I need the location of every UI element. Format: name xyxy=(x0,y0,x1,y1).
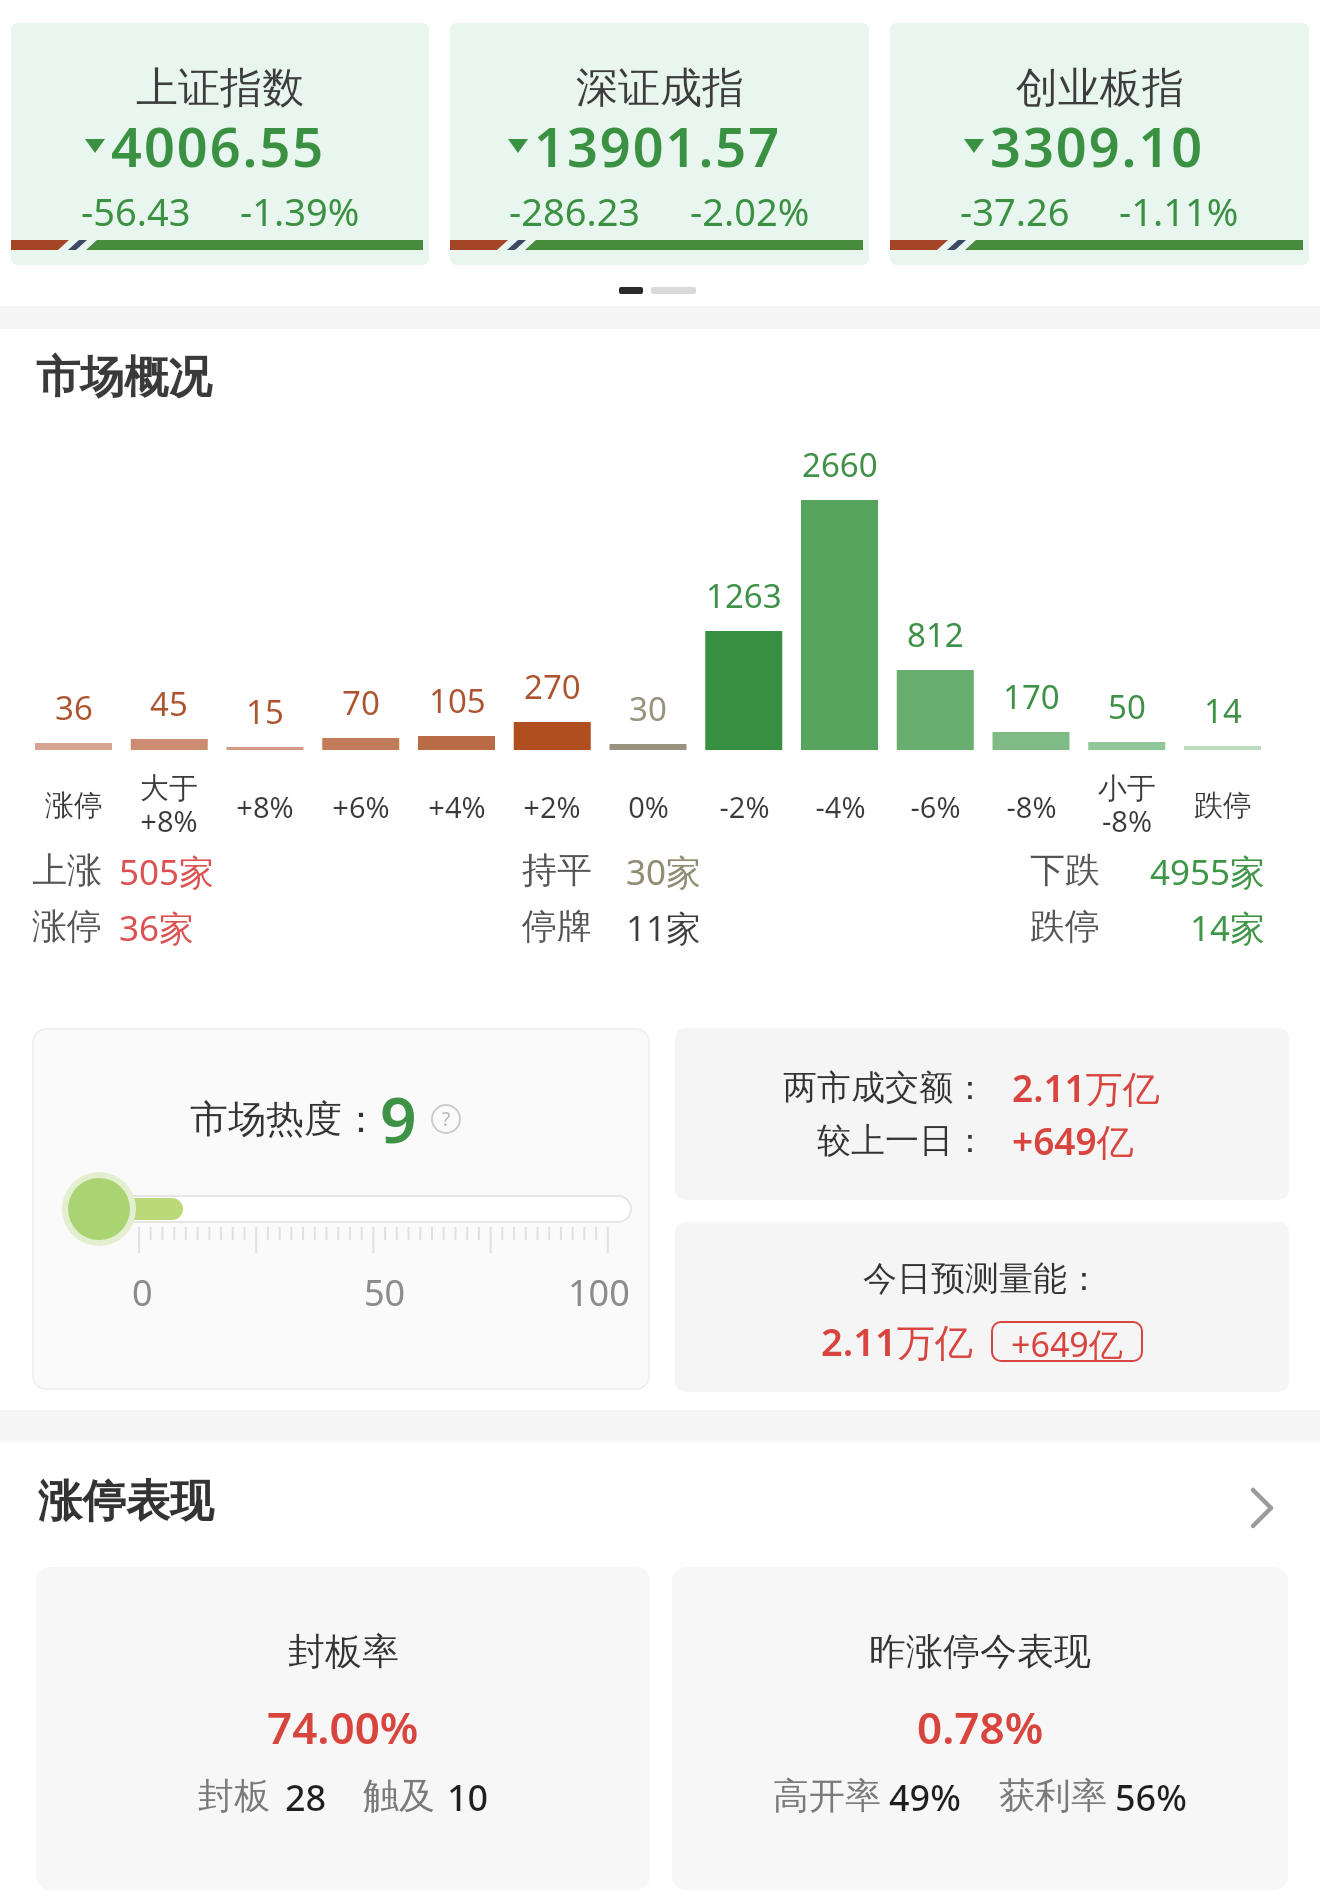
button[interactable]: 今日预测量能： xyxy=(675,1222,1289,1392)
staticText: 小于 -8% xyxy=(1098,770,1156,840)
staticText: 50 xyxy=(364,1268,406,1317)
staticText: 4955家 xyxy=(1150,848,1266,896)
staticText: 2660 xyxy=(802,442,878,487)
staticText: 270 xyxy=(524,664,581,709)
staticText: 上证指数 xyxy=(136,62,304,115)
staticText: 涨停表现 xyxy=(38,1474,214,1529)
staticText: 1263 xyxy=(706,573,782,618)
staticText: 9 xyxy=(380,1075,417,1162)
staticText: 74.00% xyxy=(267,1697,419,1757)
staticText: ? xyxy=(442,1106,451,1132)
staticText: 505家 xyxy=(119,848,215,896)
staticText: 2.11万亿 xyxy=(1012,1062,1160,1113)
staticText: 涨停 xyxy=(45,787,103,824)
staticText: 较上一日： xyxy=(817,1119,987,1162)
staticText: +649亿 xyxy=(1011,1321,1123,1362)
staticText: +8% xyxy=(236,787,294,826)
staticText: 大于 +8% xyxy=(140,770,198,840)
staticText: 28 xyxy=(285,1773,327,1822)
button[interactable]: 市场热度： xyxy=(32,1028,650,1390)
staticText: -1.39% xyxy=(240,185,360,237)
staticText: 跌停 xyxy=(1030,904,1100,948)
staticText: -4% xyxy=(815,787,866,826)
staticText: +6% xyxy=(332,787,390,826)
staticText: 市场概况 xyxy=(36,350,212,405)
staticText: 2.11万亿 xyxy=(821,1315,973,1367)
staticText: -2.02% xyxy=(690,185,810,237)
button[interactable]: 封板率 xyxy=(36,1567,650,1890)
staticText: 触及 xyxy=(363,1773,435,1818)
button[interactable]: 两市成交额： xyxy=(675,1028,1289,1200)
button[interactable]: 上证指数 xyxy=(11,23,429,265)
staticText: 封板率 xyxy=(288,1628,399,1675)
staticText: +649亿 xyxy=(1012,1115,1134,1166)
staticText: 今日预测量能： xyxy=(863,1257,1101,1300)
staticText: 高开率 xyxy=(773,1773,881,1818)
staticText: 56% xyxy=(1115,1773,1187,1822)
staticText: 30家 xyxy=(626,848,702,896)
staticText: 3309.10 xyxy=(990,109,1205,183)
staticText: 36家 xyxy=(119,904,195,952)
staticText: 30 xyxy=(629,686,667,731)
staticText: 持平 xyxy=(522,848,592,892)
staticText: 0% xyxy=(628,787,669,826)
staticText: 停牌 xyxy=(522,904,592,948)
staticText: -56.43 xyxy=(81,185,191,237)
button[interactable]: 深证成指 xyxy=(450,23,869,265)
staticText: 4006.55 xyxy=(111,109,326,183)
staticText: +2% xyxy=(523,787,581,826)
staticText: 下跌 xyxy=(1030,848,1100,892)
staticText: 70 xyxy=(342,680,380,725)
staticText: 45 xyxy=(150,681,188,726)
staticText: 创业板指 xyxy=(1016,62,1184,115)
staticText: -2% xyxy=(719,787,770,826)
staticText: 14 xyxy=(1204,688,1242,733)
staticText: 13901.57 xyxy=(534,109,782,183)
staticText: 49% xyxy=(889,1773,961,1822)
staticText: 14家 xyxy=(1190,904,1266,952)
staticText: 812 xyxy=(907,612,964,657)
staticText: 深证成指 xyxy=(576,62,744,115)
staticText: 0 xyxy=(132,1268,153,1317)
staticText: 昨涨停今表现 xyxy=(869,1628,1091,1675)
staticText: 跌停 xyxy=(1194,787,1252,824)
staticText: 36 xyxy=(55,685,93,730)
staticText: 100 xyxy=(568,1268,630,1317)
staticText: 0.78% xyxy=(917,1697,1044,1757)
staticText: 15 xyxy=(246,689,284,734)
button[interactable]: 昨涨停今表现 xyxy=(672,1567,1288,1890)
staticText: 封板 xyxy=(198,1773,270,1818)
staticText: 10 xyxy=(447,1773,489,1822)
staticText: -286.23 xyxy=(509,185,641,237)
staticText: 105 xyxy=(429,678,486,723)
staticText: 50 xyxy=(1108,684,1146,729)
button[interactable]: 创业板指 xyxy=(890,23,1309,265)
staticText: 170 xyxy=(1003,674,1060,719)
staticText: 涨停 xyxy=(32,904,102,948)
staticText: +4% xyxy=(428,787,486,826)
staticText: 上涨 xyxy=(32,848,102,892)
staticText: -8% xyxy=(1006,787,1057,826)
staticText: 市场热度： xyxy=(190,1095,380,1143)
button[interactable] xyxy=(1248,1488,1276,1528)
staticText: -6% xyxy=(910,787,961,826)
staticText: -37.26 xyxy=(960,185,1070,237)
staticText: -1.11% xyxy=(1119,185,1239,237)
staticText: 11家 xyxy=(626,904,702,952)
staticText: 获利率 xyxy=(999,1773,1107,1818)
staticText: 两市成交额： xyxy=(783,1066,987,1109)
